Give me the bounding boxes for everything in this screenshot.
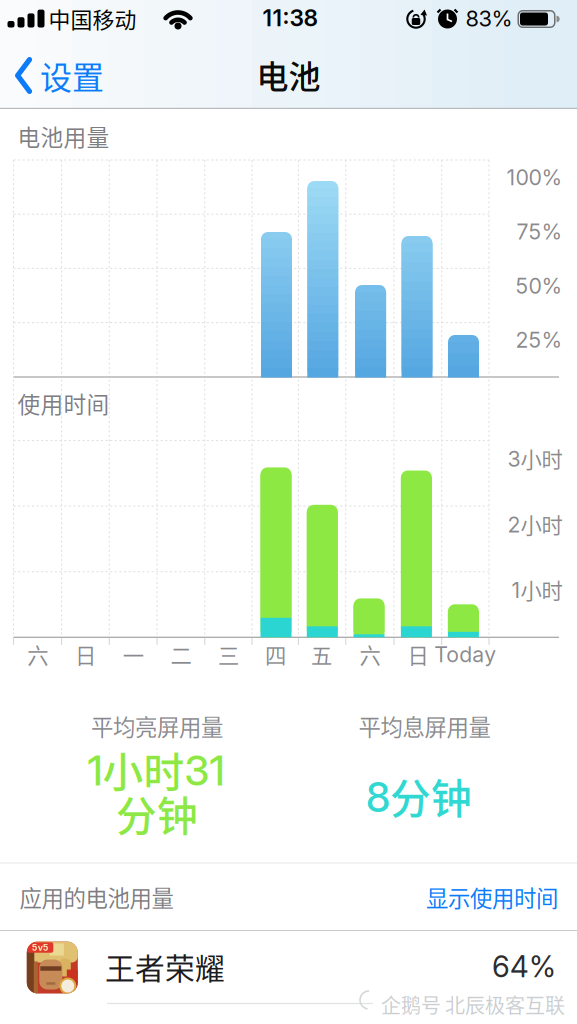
- button[interactable]: 显示使用时间: [358, 881, 558, 913]
- staticText: Today: [434, 642, 496, 667]
- staticText: 企鹅号 北辰极客互联: [381, 990, 565, 1019]
- staticText: 王者荣耀: [105, 945, 225, 988]
- staticText: 1小时: [511, 574, 562, 605]
- staticText: 日: [75, 639, 96, 670]
- staticText: 六: [359, 639, 380, 670]
- staticText: 六: [27, 639, 48, 670]
- staticText: 25%: [515, 327, 562, 353]
- staticText: 二: [170, 639, 191, 670]
- staticText: 电池: [256, 51, 320, 98]
- staticText: 5v5: [32, 942, 49, 953]
- staticText: 日: [407, 639, 428, 670]
- staticText: 100%: [506, 165, 562, 190]
- button[interactable]: 设置: [15, 52, 104, 99]
- staticText: 分钟: [116, 784, 198, 843]
- staticText: 电池用量: [17, 120, 109, 152]
- staticText: 四: [265, 639, 286, 670]
- staticText: 75%: [516, 219, 562, 245]
- staticText: 平均息屏用量: [358, 710, 490, 742]
- staticText: 50%: [515, 273, 562, 299]
- staticText: 应用的电池用量: [19, 881, 173, 913]
- staticText: 2小时: [507, 509, 562, 540]
- staticText: 64%: [492, 949, 556, 984]
- staticText: 83%: [465, 5, 512, 32]
- staticText: 中国移动: [48, 3, 136, 34]
- staticText: 平均亮屏用量: [91, 710, 223, 742]
- staticText: 3小时: [507, 443, 562, 474]
- staticText: 使用时间: [17, 387, 109, 419]
- staticText: 设置: [40, 52, 104, 99]
- staticText: 一: [123, 639, 144, 670]
- staticText: 显示使用时间: [426, 881, 558, 913]
- staticText: 三: [218, 639, 239, 670]
- staticText: 五: [311, 639, 332, 670]
- staticText: 1小时31: [87, 740, 224, 799]
- button[interactable]: 5v5: [0, 931, 577, 1024]
- staticText: 11:38: [262, 4, 318, 32]
- staticText: 8分钟: [366, 767, 472, 825]
